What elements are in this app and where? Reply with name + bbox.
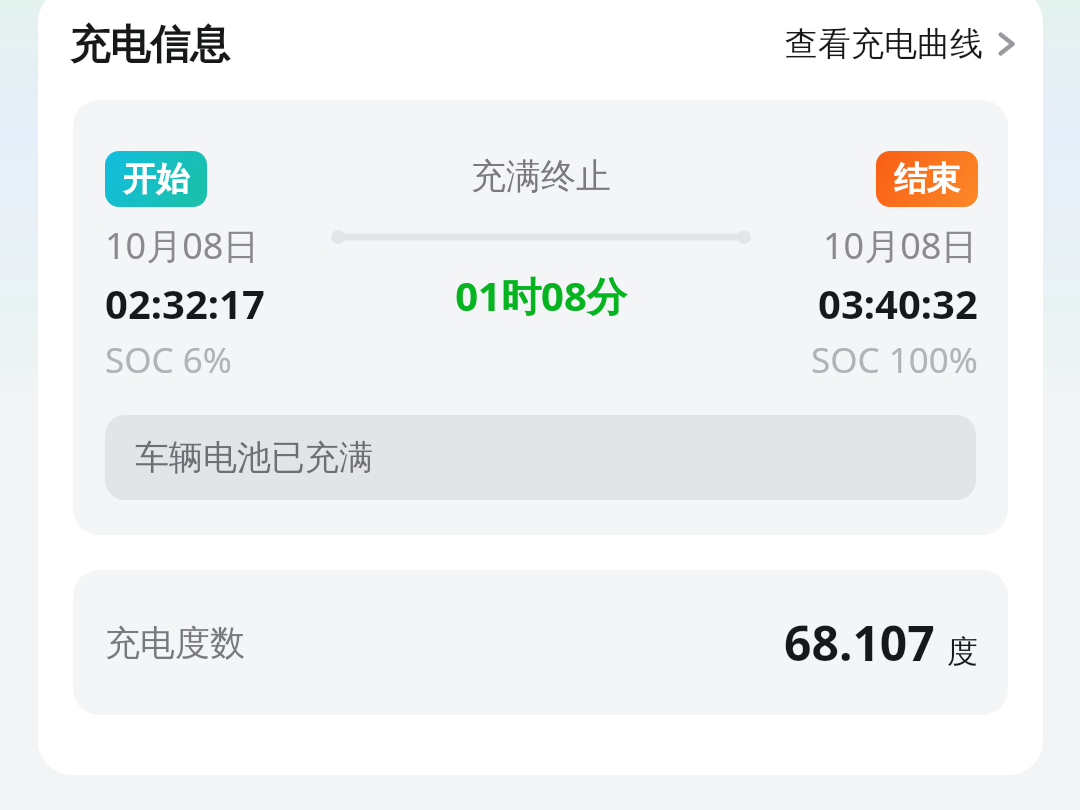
other: 查看充电曲线 (997, 27, 1017, 61)
staticText: 开始 (123, 158, 189, 200)
staticText: 01时08分 (455, 268, 627, 323)
staticText: 度 (947, 632, 978, 671)
staticText: 结束 (894, 158, 960, 200)
button[interactable]: 查看充电曲线 (769, 13, 1043, 75)
staticText: 车辆电池已充满 (135, 436, 373, 479)
staticText: 查看充电曲线 (785, 23, 983, 65)
staticText: 68.107 (784, 610, 935, 675)
button[interactable]: 开始 (105, 151, 207, 207)
staticText: SOC 6% (105, 336, 232, 384)
staticText: 10月08日 (105, 221, 260, 270)
staticText: SOC 100% (811, 336, 978, 384)
staticText: 10月08日 (823, 221, 978, 270)
staticText: 02:32:17 (105, 276, 265, 330)
staticText: 充满终止 (471, 154, 611, 198)
staticText: 充电度数 (105, 621, 245, 665)
staticText: 充电信息 (70, 19, 230, 69)
staticText: 03:40:32 (818, 276, 978, 330)
button[interactable]: 充电度数 (73, 570, 1008, 715)
button[interactable]: 结束 (876, 151, 978, 207)
